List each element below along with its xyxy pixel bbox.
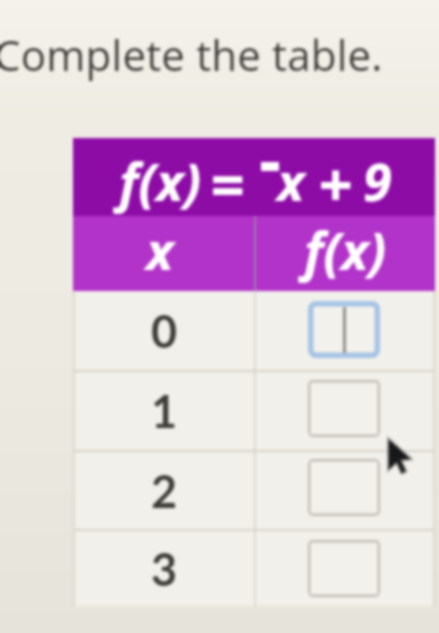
staticText: 1 [151,384,178,438]
staticText: 2 [151,464,178,518]
staticText: f(x) [119,145,202,216]
button[interactable]: Answer input box [308,459,380,516]
staticText: + [318,142,353,220]
staticText: Complete the table. [0,26,383,83]
button[interactable]: Answer input box [308,380,380,437]
button[interactable]: Answer input box [308,540,380,597]
staticText: x [146,214,174,285]
staticText: f(x) [304,214,387,285]
button[interactable]: Answer input box [308,301,380,358]
staticText: 0 [151,304,178,358]
staticText: x [277,145,305,216]
staticText: 3 [151,542,178,596]
staticText: = [210,142,245,220]
staticText: 9 [363,145,392,216]
